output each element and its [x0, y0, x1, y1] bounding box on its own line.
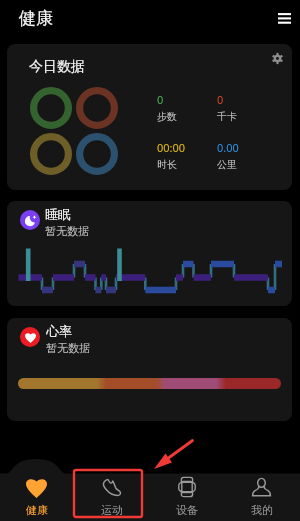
button[interactable]: Settings	[265, 46, 289, 70]
button[interactable]: 睡眠	[7, 201, 292, 306]
staticText: 心率	[46, 323, 72, 339]
staticText: 0.00	[217, 140, 239, 155]
staticText: 公里	[217, 158, 237, 171]
button[interactable]: 设备	[149, 473, 224, 521]
staticText: 今日数据	[29, 58, 85, 76]
staticText: 我的	[251, 503, 273, 517]
staticText: 健康	[26, 503, 48, 517]
staticText: 步数	[157, 110, 177, 123]
button[interactable]: 我的	[224, 473, 299, 521]
button[interactable]: 心率	[7, 318, 292, 421]
button[interactable]: 今日数据	[7, 44, 292, 190]
staticText: 暂无数据	[45, 224, 89, 238]
staticText: 时长	[157, 158, 177, 171]
staticText: 0	[157, 92, 164, 107]
staticText: 00:00	[157, 140, 186, 155]
button[interactable]: 运动	[74, 473, 149, 521]
staticText: 暂无数据	[46, 341, 90, 355]
staticText: 0	[217, 92, 224, 107]
staticText: 睡眠	[45, 206, 71, 222]
button[interactable]: Menu	[272, 6, 296, 30]
button[interactable]: 健康	[0, 473, 74, 521]
staticText: 运动	[101, 503, 123, 517]
staticText: 千卡	[217, 110, 237, 123]
staticText: 设备	[176, 503, 198, 517]
staticText: 健康	[19, 8, 53, 29]
